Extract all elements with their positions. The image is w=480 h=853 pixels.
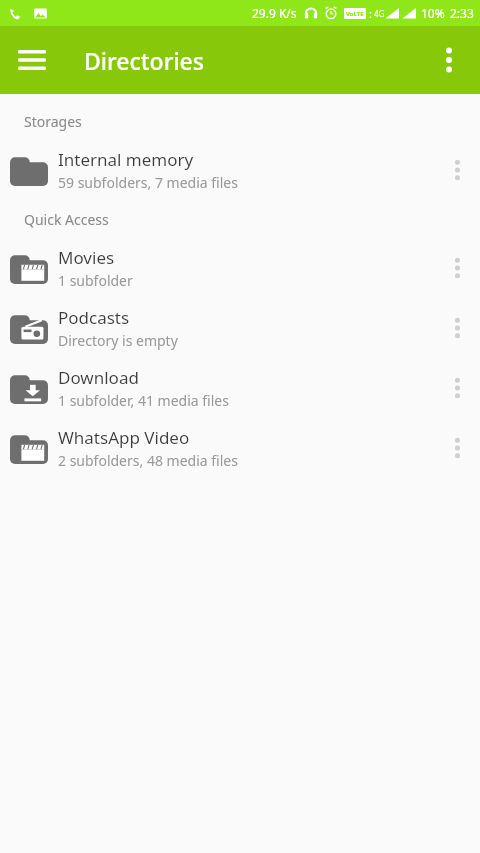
button[interactable]: Podcasts [0,298,480,358]
button[interactable]: Open navigation drawer [6,34,58,86]
staticText: 59 subfolders, 7 media files [58,173,238,192]
staticText: Podcasts [58,306,130,329]
staticText: Internal memory [58,148,194,171]
staticText: Download [58,366,139,389]
staticText: : [369,6,372,21]
button[interactable]: WhatsApp Video [0,418,480,478]
staticText: 1 subfolder, 41 media files [58,391,229,410]
staticText: 2:33 [450,5,474,21]
button[interactable]: Internal memory [0,140,480,200]
staticText: 10% [421,5,445,21]
staticText: Storages [24,112,82,131]
button[interactable]: More options for Internal memory [434,140,480,200]
staticText: 1 subfolder [58,271,133,290]
button[interactable]: More options for Movies [434,238,480,298]
staticText: VoLTE [346,10,364,18]
staticText: 2 subfolders, 48 media files [58,451,238,470]
staticText: Directory is empty [58,331,178,350]
staticText: Directories [84,45,204,76]
button[interactable]: More options for Download [434,358,480,418]
button[interactable]: Movies [0,238,480,298]
staticText: WhatsApp Video [58,426,190,449]
button[interactable]: More options for WhatsApp Video [434,418,480,478]
button[interactable]: More options [424,35,474,85]
staticText: 29.9 K/s [252,5,297,21]
staticText: 4G [374,8,385,19]
button[interactable]: Download [0,358,480,418]
staticText: Quick Access [24,210,109,229]
button[interactable]: More options for Podcasts [434,298,480,358]
staticText: Movies [58,246,115,269]
